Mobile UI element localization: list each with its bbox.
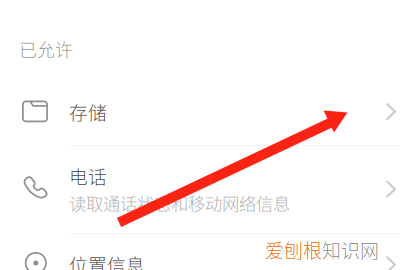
staticText: 已允许	[19, 36, 73, 62]
staticText: 位置信息	[69, 250, 145, 270]
staticText: 读取通话状态和移动网络信息	[69, 190, 290, 216]
button[interactable]: 电话	[0, 145, 400, 233]
staticText: 知识网	[322, 236, 379, 263]
button[interactable]: 位置信息	[0, 232, 400, 270]
staticText: 存储	[69, 98, 107, 125]
button[interactable]: 存储	[0, 78, 400, 145]
staticText: 爱刨根	[265, 236, 322, 263]
staticText: 电话	[69, 162, 107, 189]
